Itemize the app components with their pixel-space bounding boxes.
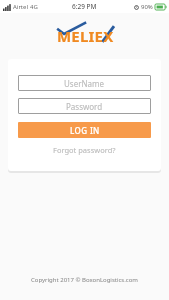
staticText: LOG IN [70,125,100,136]
button[interactable]: Password [18,98,151,114]
staticText: MELIEX [57,26,114,46]
staticText: 6:29 PM [72,2,97,11]
staticText: UserName [64,78,105,89]
staticText: Copyright 2017 © BoxonLogistics.com [0,276,169,284]
button[interactable]: Forgot password? [18,145,151,155]
button[interactable]: UserName [18,75,151,91]
staticText: 90% [141,3,153,11]
staticText: Airtel [13,3,28,11]
button[interactable]: LOG IN [18,122,151,138]
staticText: 4G [30,3,38,11]
staticText: Forgot password? [53,145,116,155]
staticText: Password [66,101,103,112]
